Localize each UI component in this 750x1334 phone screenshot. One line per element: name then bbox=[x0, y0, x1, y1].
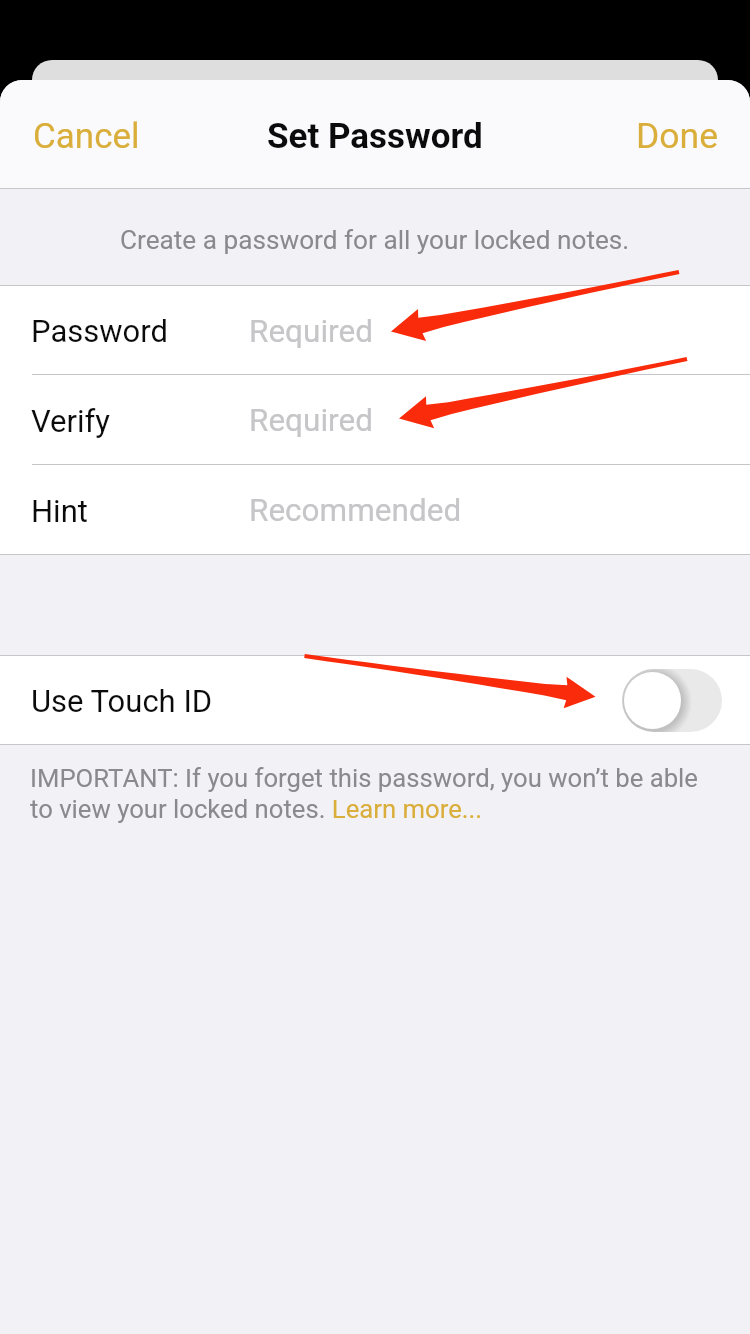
staticText: Cancel bbox=[33, 116, 140, 157]
button[interactable]: Use Touch ID bbox=[0, 656, 750, 744]
staticText: Hint bbox=[31, 493, 88, 529]
button[interactable]: Password bbox=[0, 286, 750, 374]
staticText: Done bbox=[636, 115, 718, 157]
staticText: Recommended bbox=[249, 492, 462, 529]
button[interactable]: Use Touch ID toggle bbox=[622, 669, 722, 732]
button[interactable]: Cancel bbox=[0, 92, 164, 177]
button[interactable]: Done bbox=[612, 91, 750, 177]
staticText: Create a password for all your locked no… bbox=[120, 225, 630, 256]
staticText: Verify bbox=[31, 403, 110, 439]
staticText: Required bbox=[249, 402, 373, 439]
staticText: Use Touch ID bbox=[31, 683, 213, 719]
button[interactable]: Verify bbox=[0, 375, 750, 464]
staticText: Required bbox=[249, 313, 373, 350]
staticText: Set Password bbox=[267, 116, 483, 157]
staticText: IMPORTANT: If you forget this password, … bbox=[30, 763, 708, 824]
button[interactable]: Hint bbox=[0, 465, 750, 554]
staticText: Password bbox=[31, 313, 168, 349]
